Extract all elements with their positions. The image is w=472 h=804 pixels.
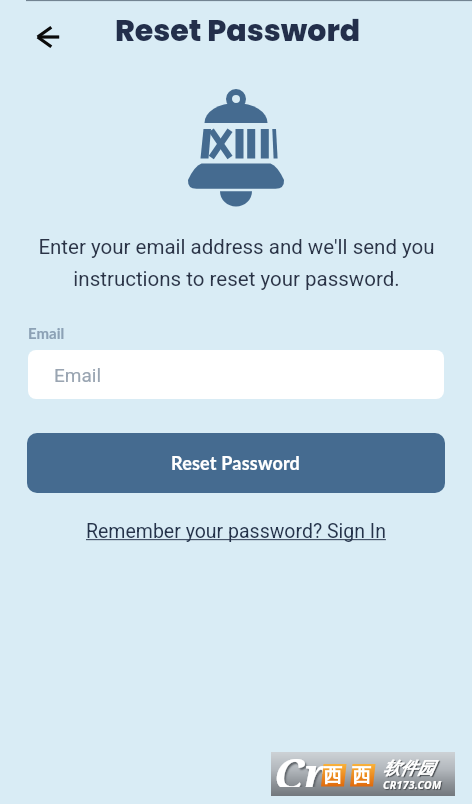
staticText: Reset Password: [171, 452, 301, 474]
staticText: Reset Password: [115, 10, 361, 52]
staticText: 西: [323, 764, 342, 788]
staticText: Cr: [274, 743, 328, 787]
button[interactable]: [24, 13, 72, 61]
staticText: 软件园: [383, 758, 434, 779]
staticText: CR173.COM: [383, 778, 442, 792]
button[interactable]: Email: [28, 350, 444, 399]
button[interactable]: Reset Password: [27, 433, 445, 493]
staticText: 西: [352, 764, 371, 788]
staticText: Enter your email address and we'll send …: [38, 235, 435, 291]
staticText: Email: [28, 324, 65, 342]
staticText: Email: [54, 364, 102, 386]
button[interactable]: Remember your password? Sign In: [86, 520, 386, 543]
